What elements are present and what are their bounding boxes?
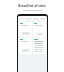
- button[interactable]: [19, 38, 32, 54]
- staticText: Why data with ideas: [23, 9, 42, 12]
- button[interactable]: Filters: [18, 16, 47, 21]
- button[interactable]: [33, 22, 46, 37]
- button[interactable]: [19, 22, 32, 37]
- button[interactable]: [33, 38, 46, 54]
- staticText: Broad list of sites: [18, 4, 46, 8]
